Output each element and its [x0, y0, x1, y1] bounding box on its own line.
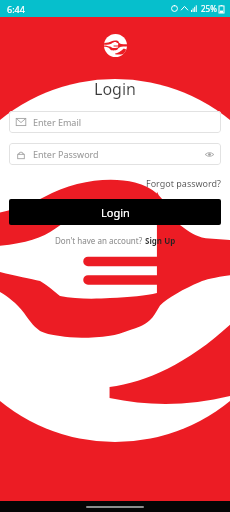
staticText: Login [101, 205, 130, 220]
button[interactable]: Enter Password [9, 143, 221, 165]
button[interactable]: Login [9, 199, 221, 225]
staticText: Don't have an account? [55, 235, 145, 246]
staticText: Enter Email [33, 116, 214, 128]
staticText: 25% [201, 3, 217, 14]
button[interactable]: Sign Up [145, 235, 176, 246]
staticText: Login [0, 78, 230, 100]
button[interactable]: Forgot password? [0, 177, 221, 189]
button[interactable]: Enter Email [9, 111, 221, 133]
staticText: 6:44 [7, 3, 25, 15]
staticText: Enter Password [33, 148, 205, 160]
other: Show password [205, 150, 214, 159]
